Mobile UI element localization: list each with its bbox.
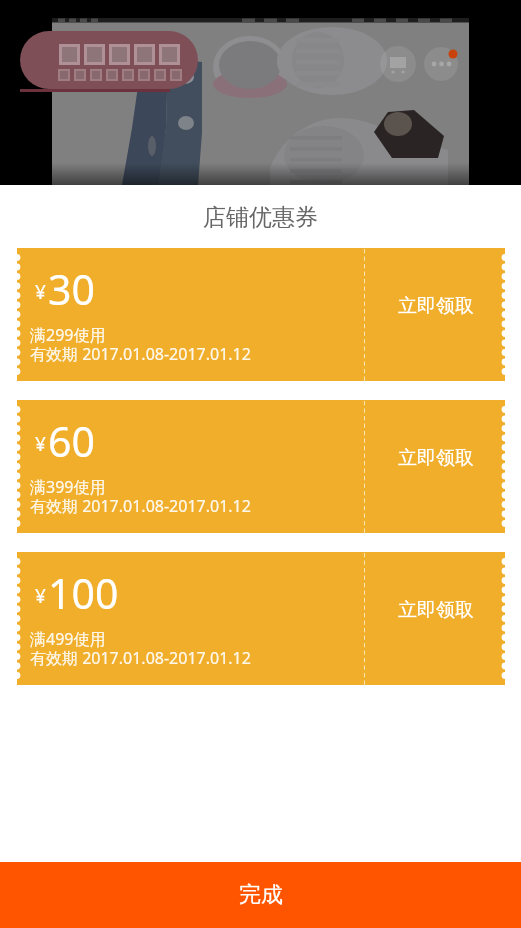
staticText: 完成 [239,881,283,909]
staticText: 满499使用 有效期 2017.01.08-2017.01.12 [30,628,251,669]
staticText: 100 [48,565,119,621]
button[interactable]: 立即领取 [366,552,505,685]
button[interactable]: 完成 [0,862,521,928]
button[interactable]: ¥ [17,400,505,533]
staticText: ¥ [35,279,46,305]
button[interactable]: ¥ [17,248,505,381]
staticText: 立即领取 [398,294,474,318]
staticText: 立即领取 [398,446,474,470]
staticText: ¥ [35,431,46,457]
staticText: 满399使用 有效期 2017.01.08-2017.01.12 [30,476,251,517]
staticText: 30 [48,261,95,317]
staticText: ¥ [35,583,46,609]
button[interactable]: 立即领取 [366,400,505,533]
staticText: 60 [48,413,95,469]
staticText: 店铺优惠券 [203,203,318,232]
button[interactable]: 立即领取 [366,248,505,381]
button[interactable]: ¥ [17,552,505,685]
staticText: 立即领取 [398,598,474,622]
staticText: 满299使用 有效期 2017.01.08-2017.01.12 [30,324,251,365]
